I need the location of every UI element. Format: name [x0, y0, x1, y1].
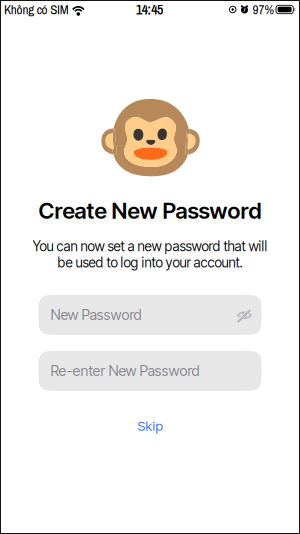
staticText: Re-enter New Password: [50, 362, 199, 379]
staticText: Skip: [137, 418, 162, 434]
staticText: be used to log into your account.: [57, 254, 242, 271]
staticText: 14:45: [136, 0, 163, 19]
staticText: Không có SIM: [4, 1, 69, 18]
staticText: Create New Password: [38, 197, 261, 224]
button[interactable]: Skip: [117, 412, 182, 440]
staticText: 🐵: [94, 86, 205, 188]
staticText: You can now set a new password that will: [32, 238, 267, 254]
staticText: New Password: [50, 306, 141, 323]
button[interactable]: Re-enter New Password: [38, 351, 261, 391]
button[interactable]: New Password: [38, 295, 261, 335]
staticText: 97%: [253, 1, 274, 18]
